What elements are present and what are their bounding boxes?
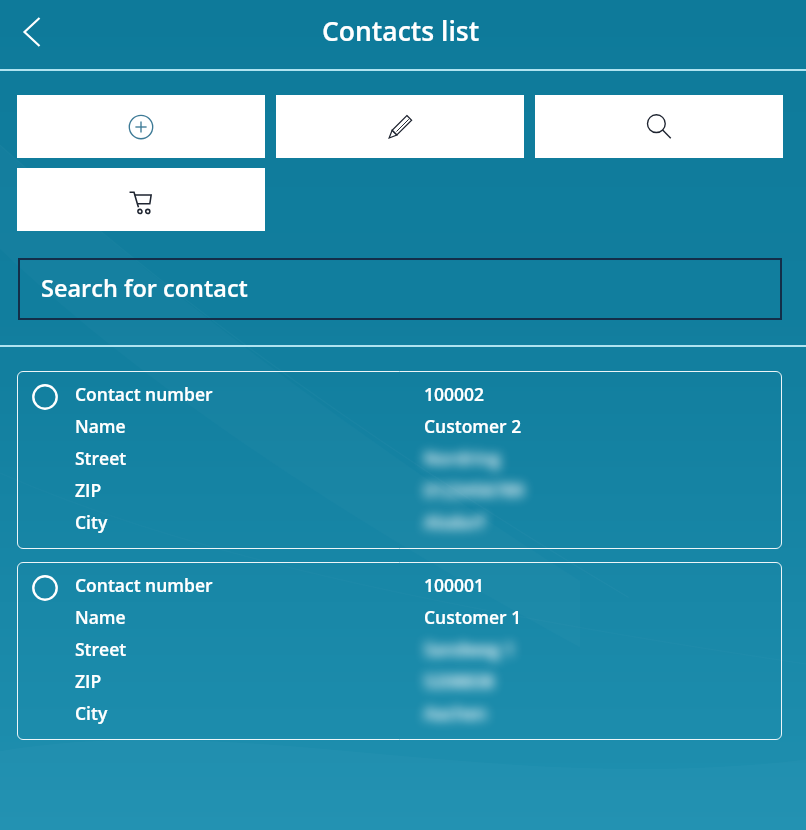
button[interactable]: Add contact [17, 95, 265, 158]
staticText: 0123456789 [424, 478, 525, 502]
staticText: Search for contact [41, 272, 248, 304]
button[interactable]: Contact number [17, 371, 782, 549]
staticText: Street [75, 637, 127, 661]
staticText: 5208838 [424, 669, 495, 693]
staticText: Contacts list [322, 13, 480, 49]
staticText: ZIP [75, 478, 102, 502]
staticText: City [75, 701, 108, 725]
button[interactable]: Search [535, 95, 783, 158]
staticText: Customer 1 [424, 605, 522, 629]
staticText: Name [75, 414, 126, 438]
button[interactable]: Edit contact [276, 95, 524, 158]
button[interactable]: Contact number [17, 562, 782, 740]
staticText: 100002 [424, 382, 485, 406]
staticText: Contact number [75, 382, 213, 406]
staticText: Alsdorf [424, 510, 485, 534]
staticText: Aachen [424, 701, 487, 725]
staticText: Nordring [424, 446, 501, 470]
button[interactable]: Back [5, 5, 59, 59]
staticText: 100001 [424, 573, 485, 597]
button[interactable]: Shopping cart [17, 168, 265, 231]
staticText: Customer 2 [424, 414, 522, 438]
staticText: Sandweg 1 [424, 637, 515, 661]
staticText: City [75, 510, 108, 534]
staticText: Name [75, 605, 126, 629]
button[interactable]: Search for contact [18, 258, 782, 320]
staticText: ZIP [75, 669, 102, 693]
staticText: Street [75, 446, 127, 470]
staticText: Contact number [75, 573, 213, 597]
